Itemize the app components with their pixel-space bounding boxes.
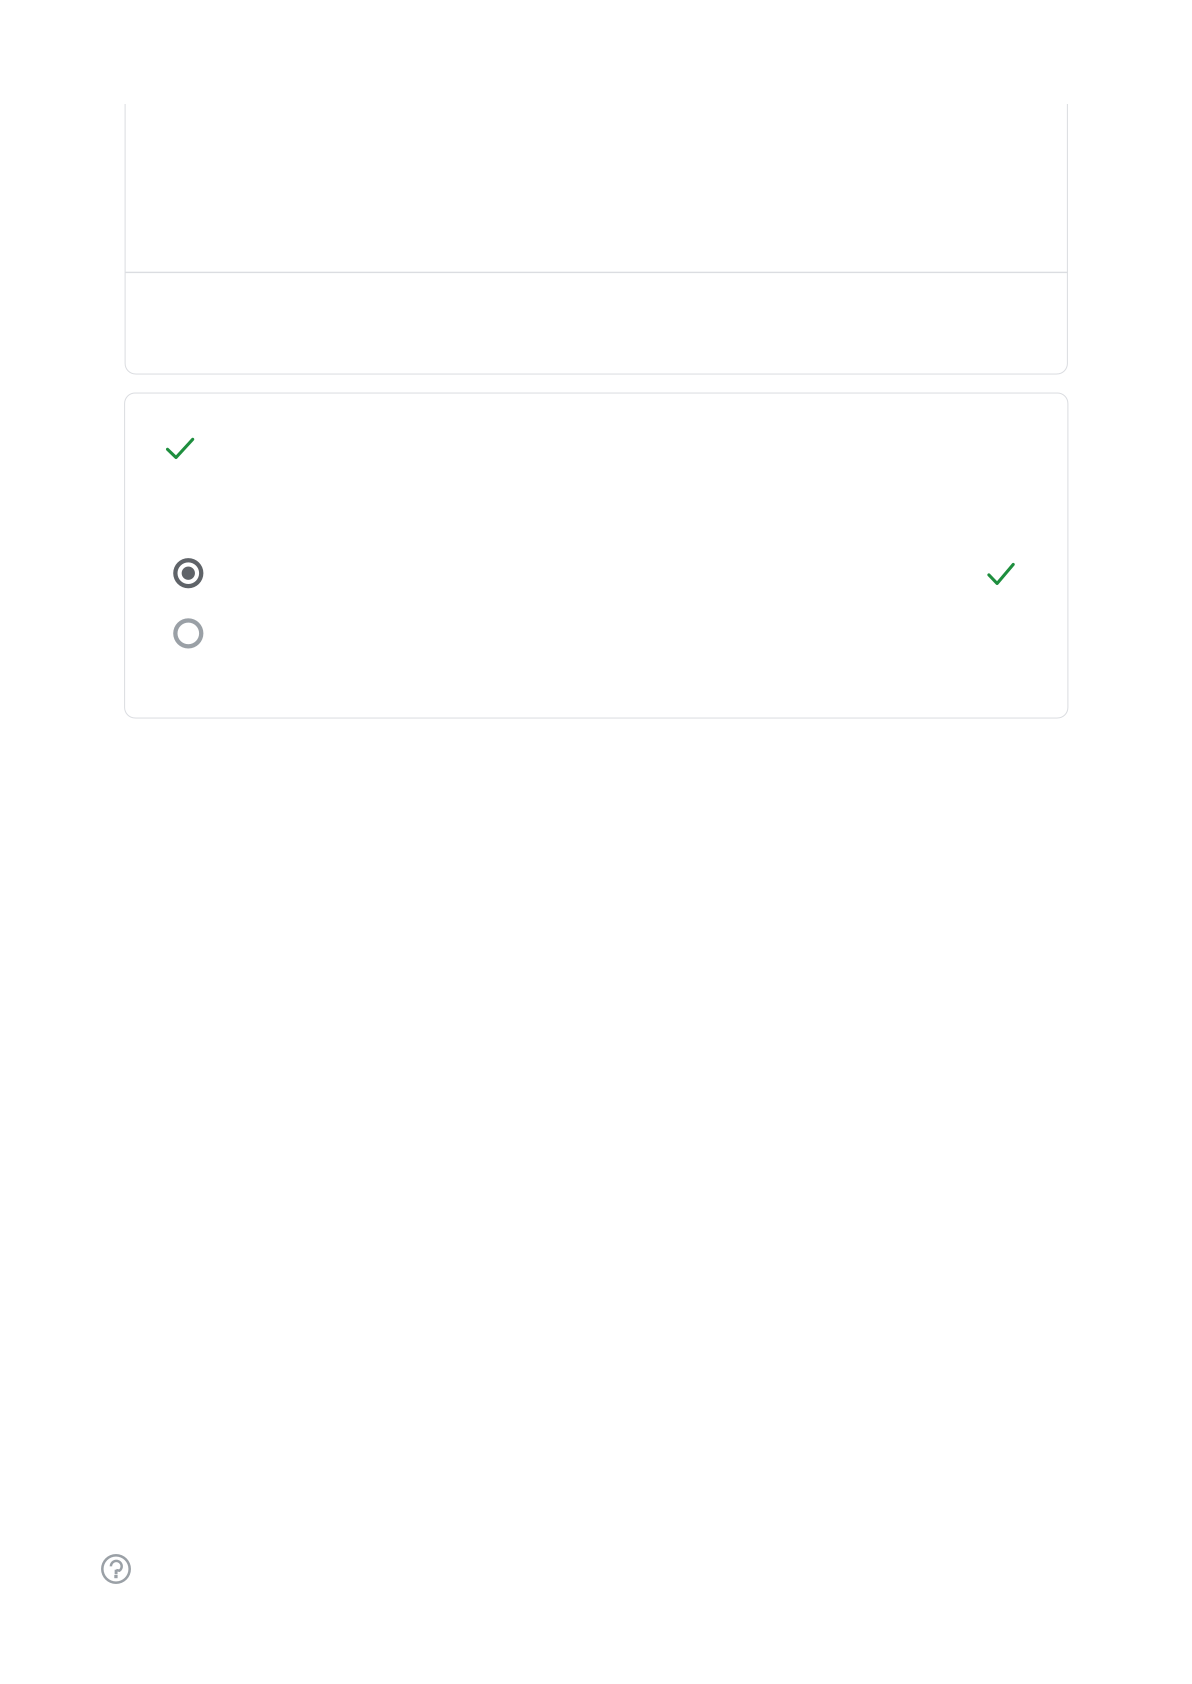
button[interactable]: Option 2 — [137, 595, 1056, 647]
button[interactable]: Answered — [137, 405, 1056, 515]
button[interactable]: Option 1, selected — [137, 535, 1056, 587]
button[interactable]: Help — [101, 1554, 131, 1584]
